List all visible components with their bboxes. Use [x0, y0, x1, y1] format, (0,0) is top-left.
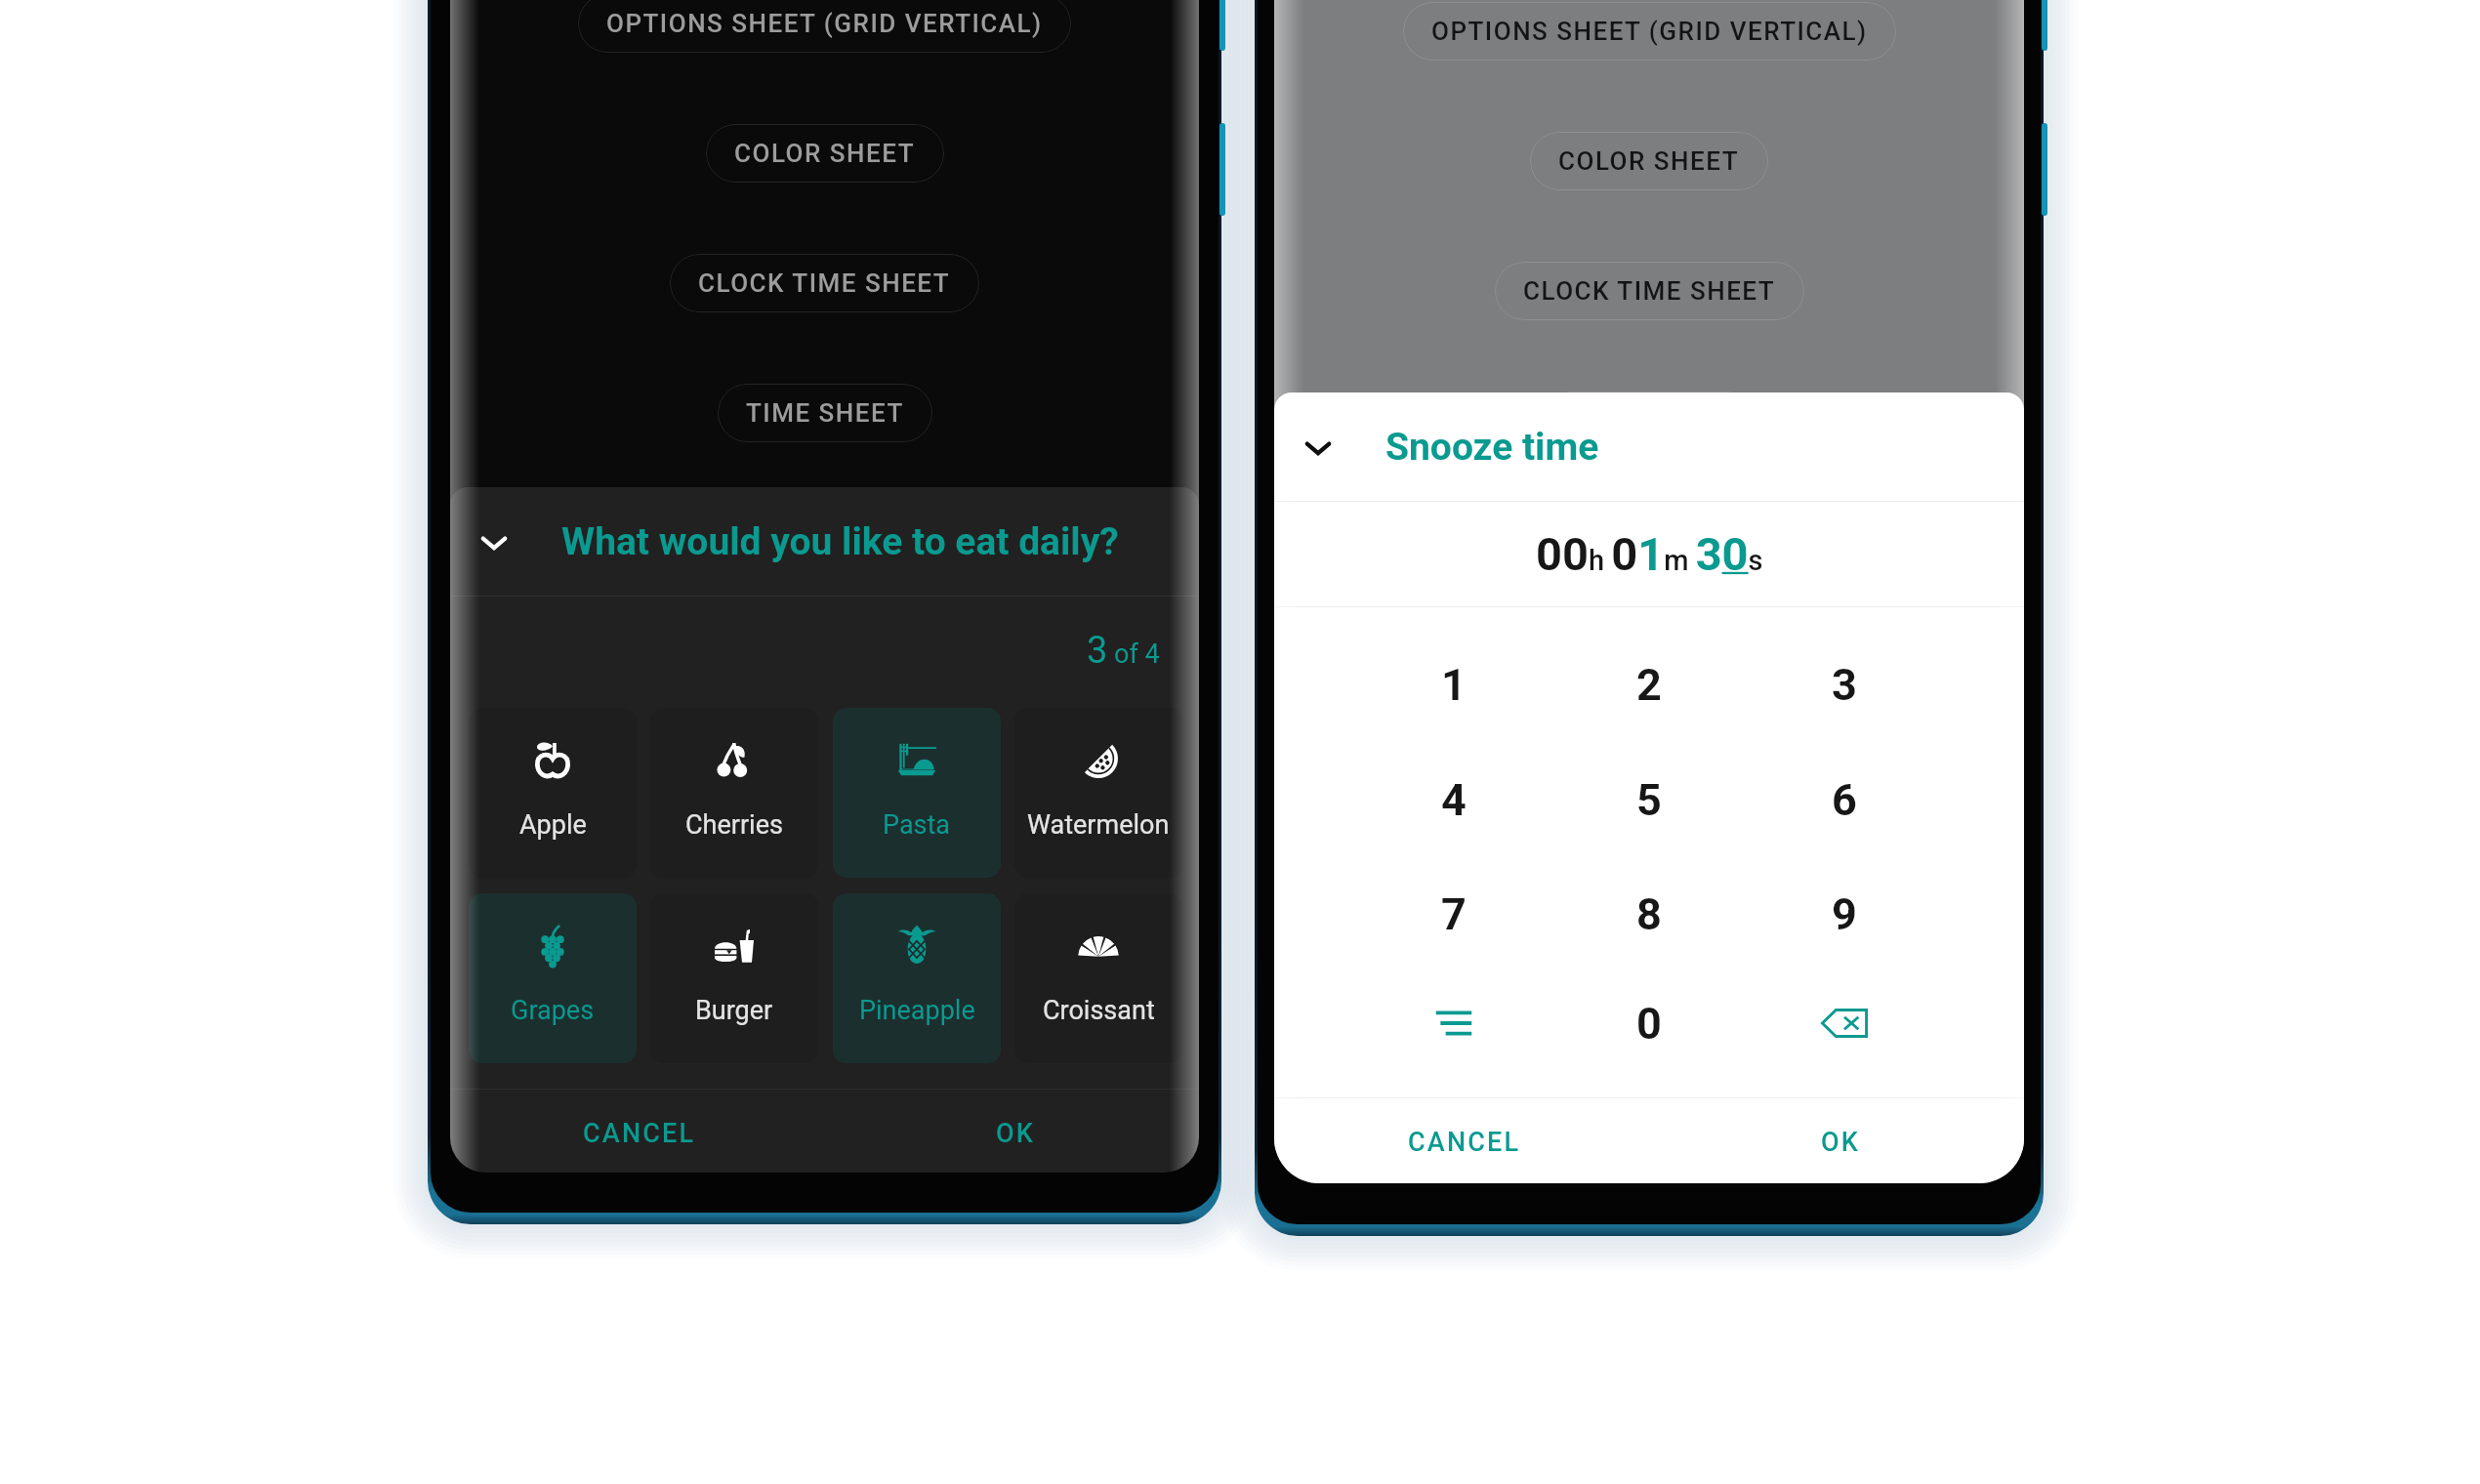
button[interactable]: 2 — [1551, 628, 1747, 741]
staticText: 8 — [1636, 888, 1662, 940]
button[interactable] — [833, 893, 1001, 1063]
button[interactable]: CLOCK TIME SHEET — [1495, 262, 1804, 320]
other: Collapse — [1296, 425, 1341, 470]
staticText: 5 — [1636, 774, 1662, 826]
button[interactable]: OK — [982, 1098, 1050, 1169]
staticText: What would you like to eat daily? — [561, 519, 1119, 564]
button[interactable] — [650, 708, 818, 878]
staticText: 4 — [1441, 774, 1467, 826]
button[interactable]: Collapse — [450, 487, 1199, 596]
staticText: OK — [996, 1118, 1036, 1149]
staticText: 7 — [1441, 888, 1467, 940]
staticText: Snooze time — [1385, 425, 1599, 470]
staticText: Apple — [519, 809, 587, 841]
button[interactable] — [1014, 708, 1182, 878]
button[interactable]: 1 — [1356, 628, 1551, 741]
staticText: Grapes — [511, 995, 595, 1026]
button[interactable]: OK — [1807, 1107, 1875, 1177]
staticText: OK — [1821, 1127, 1861, 1158]
button[interactable]: 3 — [1747, 628, 1942, 741]
button[interactable]: 4 — [1356, 743, 1551, 856]
button[interactable] — [469, 708, 637, 878]
button[interactable] — [469, 893, 637, 1063]
staticText: COLOR SHEET — [1558, 146, 1740, 176]
staticText: Watermelon — [1027, 809, 1170, 841]
button[interactable] — [650, 893, 818, 1063]
button[interactable] — [833, 708, 1001, 878]
staticText: CLOCK TIME SHEET — [698, 268, 951, 298]
button[interactable]: TIME SHEET — [718, 384, 932, 442]
button[interactable]: CANCEL — [569, 1098, 710, 1169]
button[interactable]: 7 — [1356, 857, 1551, 970]
button[interactable]: COLOR SHEET — [1530, 132, 1768, 190]
button[interactable]: CLOCK TIME SHEET — [670, 254, 979, 312]
staticText: 9 — [1832, 888, 1857, 940]
button[interactable]: COLOR SHEET — [706, 124, 944, 183]
staticText: Burger — [695, 995, 773, 1026]
button[interactable]: Backspace — [1747, 967, 1942, 1080]
staticText: Cherries — [685, 809, 783, 841]
staticText: CANCEL — [583, 1118, 696, 1149]
staticText: Pasta — [883, 809, 951, 841]
staticText: OPTIONS SHEET (GRID VERTICAL) — [1431, 17, 1868, 46]
staticText: OPTIONS SHEET (GRID VERTICAL) — [606, 9, 1043, 38]
button[interactable]: OPTIONS SHEET (GRID VERTICAL) — [1403, 2, 1896, 61]
button[interactable]: 8 — [1551, 857, 1747, 970]
button[interactable]: CANCEL — [1394, 1107, 1535, 1177]
button[interactable]: Collapse — [1274, 392, 2024, 501]
button[interactable]: OPTIONS SHEET (GRID VERTICAL) — [578, 0, 1071, 53]
button[interactable]: 6 — [1747, 743, 1942, 856]
staticText: Croissant — [1043, 995, 1155, 1026]
button[interactable]: Clear — [1356, 967, 1551, 1080]
staticText: Pineapple — [859, 995, 975, 1026]
button[interactable]: TIME SHEET — [1542, 392, 1757, 450]
button[interactable]: 9 — [1747, 857, 1942, 970]
staticText: CANCEL — [1408, 1127, 1521, 1158]
staticText: CLOCK TIME SHEET — [1523, 276, 1776, 306]
button[interactable] — [1014, 893, 1182, 1063]
staticText: 00h 01m 30s — [1536, 527, 1763, 581]
staticText: 6 — [1832, 774, 1857, 826]
button[interactable]: 5 — [1551, 743, 1747, 856]
staticText: 0 — [1636, 998, 1662, 1050]
button[interactable]: 0 — [1551, 967, 1747, 1080]
staticText: TIME SHEET — [746, 398, 904, 428]
staticText: COLOR SHEET — [734, 139, 916, 168]
staticText: 1 — [1441, 659, 1467, 711]
staticText: 3 of 4 — [1087, 629, 1160, 673]
staticText: 2 — [1636, 659, 1662, 711]
staticText: 3 — [1832, 659, 1857, 711]
other: Collapse — [472, 519, 517, 564]
